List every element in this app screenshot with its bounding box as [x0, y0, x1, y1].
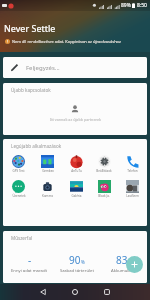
- staticText: 83: [116, 253, 128, 267]
- staticText: Újabb kapcsolatok: [11, 87, 51, 93]
- button[interactable]: Galéria: [62, 180, 90, 198]
- staticText: %: [81, 259, 85, 265]
- staticText: Itt vannak az újabb partnerek: [50, 117, 101, 122]
- button[interactable]: AnTuTu: [62, 155, 90, 173]
- staticText: -: [28, 253, 32, 267]
- staticText: AnTuTu: [71, 169, 82, 173]
- button[interactable]: 83: [100, 253, 147, 274]
- button[interactable]: GPS Test: [4, 155, 33, 173]
- button[interactable]: Üzenetek: [4, 180, 33, 198]
- button[interactable]: Kamera: [33, 180, 62, 198]
- staticText: Szabad tárterület: [60, 268, 94, 274]
- staticText: Telefon: [127, 169, 138, 173]
- staticText: Nem áll rendelkezésre adat. Koppintson a…: [12, 39, 121, 44]
- staticText: Legújabb alkalmazások: [11, 143, 62, 149]
- staticText: Ennyi adat maradt: [11, 268, 48, 274]
- button[interactable]: Gembex: [33, 155, 62, 173]
- staticText: %: [128, 259, 132, 265]
- staticText: 89%: [121, 2, 131, 9]
- staticText: Galéria: [71, 194, 82, 198]
- staticText: LastSeen: [126, 194, 139, 198]
- button[interactable]: Beállítások: [90, 155, 118, 173]
- button[interactable]: Vissza: [35, 284, 51, 300]
- staticText: Gembex: [42, 169, 54, 173]
- button[interactable]: Kezdőképernyő: [67, 284, 83, 300]
- button[interactable]: Legutóbbiak: [99, 284, 115, 300]
- button[interactable]: Nem áll rendelkezésre adat. Koppintson a…: [5, 37, 150, 46]
- staticText: Never Settle: [4, 22, 56, 34]
- staticText: Kamera: [42, 194, 53, 198]
- staticText: Műszerfal: [11, 235, 33, 241]
- staticText: Feljegyzés...: [26, 64, 60, 72]
- button[interactable]: Hozzáadás: [126, 256, 143, 273]
- staticText: 90: [69, 253, 81, 267]
- button[interactable]: Black Ja.: [90, 180, 118, 198]
- staticText: Üzenetek: [12, 194, 26, 198]
- staticText: Beállítások: [96, 169, 112, 173]
- staticText: 8:50: [137, 2, 147, 9]
- button[interactable]: LastSeen: [118, 180, 146, 198]
- button[interactable]: -: [6, 253, 53, 274]
- staticText: Black Ja.: [98, 194, 110, 198]
- button[interactable]: Feljegyzés...: [3, 57, 147, 78]
- button[interactable]: 90: [53, 253, 100, 274]
- button[interactable]: Telefon: [118, 155, 146, 173]
- staticText: GPS Test: [12, 169, 25, 173]
- staticText: Akkumulátor: [111, 268, 137, 274]
